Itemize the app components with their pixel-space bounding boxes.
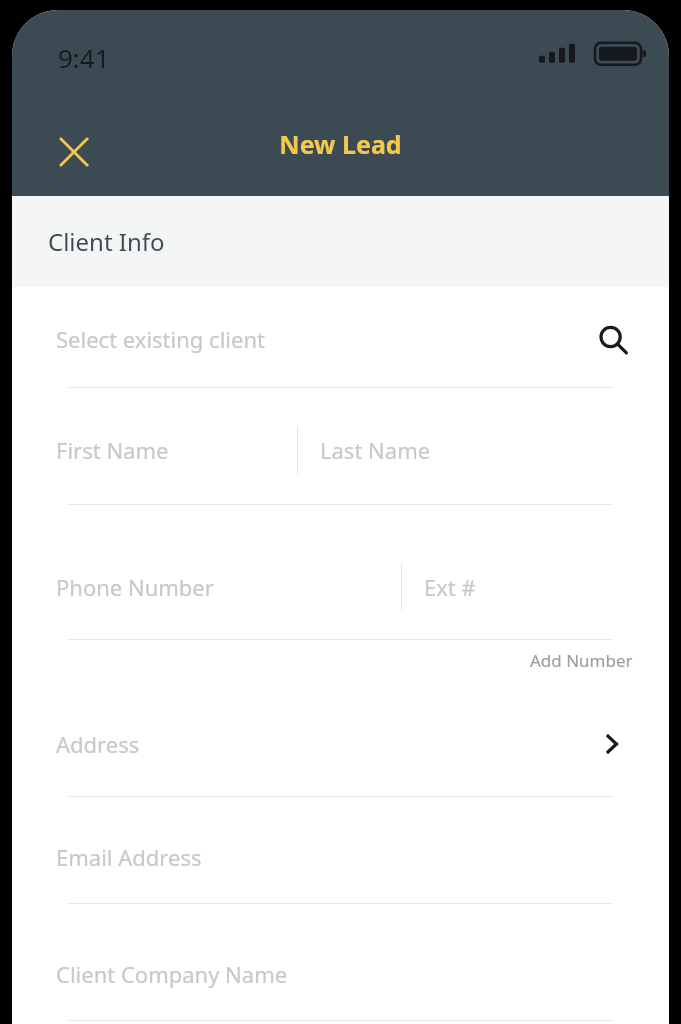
button[interactable]: First Name <box>12 420 297 480</box>
button[interactable]: Client Company Name <box>12 946 669 1002</box>
staticText: Email Address <box>56 842 202 872</box>
button[interactable]: Ext # <box>402 557 669 617</box>
staticText: 9:41 <box>58 40 110 75</box>
staticText: Address <box>56 729 140 759</box>
staticText: Client Company Name <box>56 959 288 989</box>
staticText: Last Name <box>320 435 431 465</box>
staticText: Ext # <box>424 572 476 602</box>
staticText: Client Info <box>48 225 165 258</box>
staticText: New Lead <box>279 127 402 161</box>
button[interactable]: Last Name <box>298 420 669 480</box>
other: Select address <box>595 727 629 761</box>
staticText: Select existing client <box>56 324 265 354</box>
button[interactable]: Phone Number <box>12 557 401 617</box>
staticText: First Name <box>56 435 169 465</box>
other: Search <box>593 320 633 360</box>
button[interactable]: Close <box>44 122 104 182</box>
staticText: Add Number <box>530 649 633 672</box>
button[interactable]: Add Number <box>526 645 637 676</box>
button[interactable]: Select existing client <box>12 287 669 387</box>
button[interactable]: Address <box>12 714 669 774</box>
staticText: Phone Number <box>56 572 214 602</box>
button[interactable]: Email Address <box>12 829 669 885</box>
